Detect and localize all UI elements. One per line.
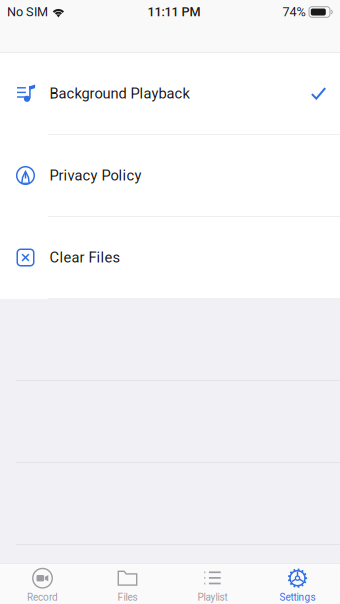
button[interactable]: Record	[0, 564, 85, 604]
staticText: 74%	[282, 5, 305, 19]
staticText: Record	[27, 591, 58, 603]
staticText: 11:11 PM	[147, 5, 200, 19]
staticText: Playlist	[197, 591, 227, 603]
button[interactable]: Playlist	[170, 564, 255, 604]
staticText: Files	[117, 591, 137, 603]
staticText: Clear Files	[49, 249, 120, 266]
button[interactable]: Privacy Policy	[0, 135, 340, 217]
button[interactable]: Clear Files	[0, 217, 340, 299]
staticText: No SIM	[7, 5, 48, 19]
button[interactable]: Files	[85, 564, 170, 604]
button[interactable]: Settings	[255, 564, 340, 604]
staticText: Privacy Policy	[49, 167, 141, 184]
button[interactable]: Background Playback	[0, 53, 340, 135]
staticText: Settings	[279, 591, 315, 603]
staticText: Background Playback	[49, 85, 189, 102]
